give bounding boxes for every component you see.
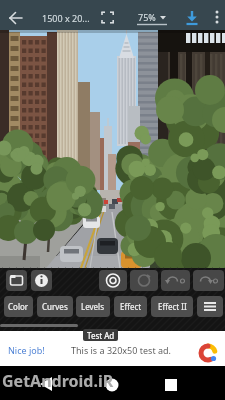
button[interactable] bbox=[161, 270, 190, 291]
staticText: 75% bbox=[138, 11, 156, 23]
button[interactable]: Levels bbox=[76, 296, 110, 317]
staticText: GetAndroid.iR bbox=[2, 370, 114, 392]
button[interactable]: Color bbox=[4, 296, 33, 317]
staticText: Color bbox=[8, 301, 29, 312]
staticText: Nice job! bbox=[8, 344, 45, 356]
button[interactable] bbox=[210, 8, 224, 28]
button[interactable] bbox=[6, 270, 27, 291]
button[interactable] bbox=[31, 270, 52, 291]
button[interactable] bbox=[182, 8, 202, 28]
button[interactable]: Test Ad bbox=[0, 331, 225, 366]
staticText: Levels bbox=[81, 301, 105, 312]
button[interactable] bbox=[150, 366, 225, 400]
button[interactable]: 75% bbox=[134, 8, 170, 26]
button[interactable] bbox=[197, 296, 223, 317]
button[interactable] bbox=[75, 366, 150, 400]
staticText: Effect II bbox=[158, 301, 187, 312]
button[interactable] bbox=[130, 270, 158, 291]
button[interactable] bbox=[0, 366, 75, 400]
button[interactable]: Curves bbox=[37, 296, 73, 317]
staticText: Curves bbox=[42, 301, 68, 312]
button[interactable] bbox=[101, 11, 115, 25]
staticText: Effect bbox=[120, 301, 142, 312]
button[interactable] bbox=[6, 8, 26, 28]
staticText: Test Ad bbox=[87, 330, 115, 341]
button[interactable]: Effect II bbox=[151, 296, 193, 317]
button[interactable] bbox=[99, 270, 127, 291]
staticText: 1500 x 20... bbox=[42, 12, 90, 24]
button[interactable] bbox=[193, 270, 224, 291]
staticText: This is a 320x50 test ad. bbox=[71, 344, 171, 356]
button[interactable]: Effect bbox=[114, 296, 147, 317]
